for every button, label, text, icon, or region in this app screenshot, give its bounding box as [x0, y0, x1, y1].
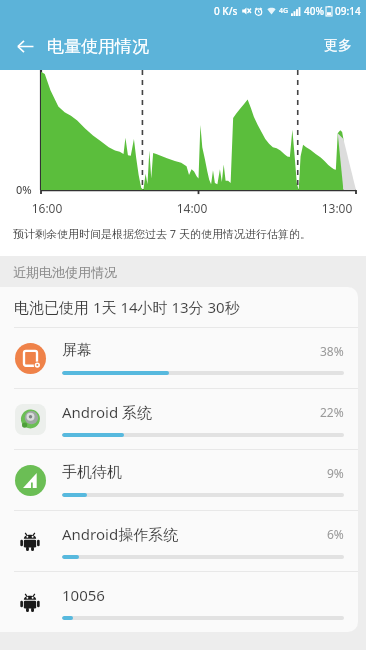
staticText: 40% — [304, 4, 324, 18]
staticText: 38% — [320, 343, 344, 359]
staticText: 电池已使用 1天 14小时 13分 30秒 — [14, 297, 240, 317]
staticText: 9% — [327, 465, 344, 481]
staticText: 10056 — [62, 585, 344, 605]
staticText: 电量使用情况 — [47, 36, 149, 57]
staticText: 屏幕 — [62, 341, 320, 360]
button[interactable]: 电池已使用 1天 14小时 13分 30秒 — [0, 287, 358, 327]
staticText: 6% — [327, 526, 344, 542]
staticText: Android操作系统 — [62, 524, 327, 544]
button[interactable]: Back — [6, 27, 44, 65]
staticText: 手机待机 — [62, 463, 327, 482]
button[interactable]: 更多 — [318, 31, 358, 61]
button[interactable]: Android 系统 — [0, 389, 358, 449]
button[interactable]: 屏幕 — [0, 328, 358, 388]
button[interactable]: Android操作系统 — [0, 511, 358, 571]
staticText: 更多 — [324, 37, 352, 55]
staticText: 22% — [320, 404, 344, 420]
staticText: 14:00 — [171, 200, 213, 216]
staticText: 0 K/s — [214, 4, 238, 18]
staticText: Android 系统 — [62, 402, 320, 422]
staticText: 4G — [279, 6, 289, 16]
staticText: 16:00 — [26, 200, 68, 216]
button[interactable]: 手机待机 — [0, 450, 358, 510]
staticText: 13:00 — [316, 200, 358, 216]
button[interactable]: 10056 — [0, 572, 358, 632]
staticText: 0% — [16, 182, 32, 197]
staticText: 近期电池使用情况 — [13, 264, 117, 280]
staticText: 预计剩余使用时间是根据您过去 7 天的使用情况进行估算的。 — [13, 226, 312, 241]
staticText: 09:14 — [335, 4, 361, 18]
